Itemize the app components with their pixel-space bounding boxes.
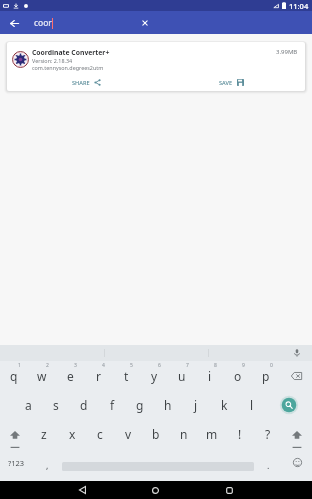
button[interactable]: Home — [142, 481, 169, 499]
button[interactable]: q — [0, 361, 28, 390]
button[interactable]: Back — [69, 481, 96, 499]
staticText: 2 — [46, 362, 49, 369]
button[interactable]: l — [238, 390, 266, 419]
button[interactable]: . — [254, 448, 282, 477]
staticText: 6 — [158, 362, 161, 369]
staticText: SHARE — [72, 79, 90, 87]
button[interactable]: ?123 — [0, 448, 33, 477]
button[interactable]: i — [196, 361, 224, 390]
button[interactable]: n — [170, 419, 198, 448]
staticText: z — [41, 426, 47, 442]
staticText: c — [97, 426, 103, 442]
button[interactable]: o — [224, 361, 252, 390]
staticText: e — [67, 368, 74, 384]
button[interactable]: Coordinate Converter+ — [7, 42, 305, 91]
button[interactable]: x — [58, 419, 86, 448]
staticText: y — [151, 368, 158, 384]
button[interactable]: s — [42, 390, 70, 419]
staticText: k — [221, 397, 228, 413]
button[interactable]: Recent apps — [216, 481, 243, 499]
button[interactable]: Shift — [0, 419, 30, 448]
staticText: m — [206, 426, 218, 442]
staticText: g — [136, 397, 144, 413]
staticText: p — [262, 368, 270, 384]
staticText: ? — [265, 426, 271, 442]
button[interactable]: Shift — [282, 419, 312, 448]
button[interactable]: Voice input — [290, 346, 304, 360]
staticText: o — [234, 368, 242, 384]
staticText: r — [96, 368, 101, 384]
staticText: j — [194, 397, 198, 413]
staticText: b — [152, 426, 160, 442]
button[interactable]: d — [70, 390, 98, 419]
button[interactable]: Search — [266, 390, 312, 419]
button[interactable]: Back — [5, 14, 23, 32]
button[interactable]: e — [56, 361, 84, 390]
button[interactable]: w — [28, 361, 56, 390]
staticText: 8 — [214, 362, 217, 369]
staticText: ! — [238, 426, 242, 442]
button[interactable]: p — [252, 361, 280, 390]
staticText: v — [125, 426, 132, 442]
staticText: SAVE — [219, 79, 233, 87]
staticText: n — [180, 426, 188, 442]
staticText: com.tennyson.degrees2utm — [32, 64, 104, 71]
staticText: d — [80, 397, 88, 413]
button[interactable]: k — [210, 390, 238, 419]
staticText: 7 — [186, 362, 189, 369]
button[interactable]: ! — [226, 419, 254, 448]
staticText: Version: 2.18.34 — [32, 57, 73, 64]
button[interactable]: r — [84, 361, 112, 390]
staticText: h — [164, 397, 172, 413]
button[interactable]: ? — [254, 419, 282, 448]
button[interactable]: c — [86, 419, 114, 448]
staticText: 5 — [130, 362, 133, 369]
button[interactable]: h — [154, 390, 182, 419]
button[interactable]: Space — [62, 448, 254, 477]
staticText: 11:04 — [289, 1, 309, 11]
staticText: x — [69, 426, 76, 442]
button[interactable]: y — [140, 361, 168, 390]
staticText: 0 — [270, 362, 273, 369]
staticText: coor — [34, 17, 52, 29]
staticText: a — [25, 397, 32, 413]
staticText: u — [178, 368, 186, 384]
button[interactable]: z — [30, 419, 58, 448]
button[interactable]: Clear search — [136, 14, 154, 32]
staticText: 3.99MB — [276, 48, 298, 56]
staticText: . — [267, 459, 270, 471]
button[interactable]: SAVE — [216, 76, 247, 89]
button[interactable]: Backspace — [280, 361, 312, 390]
staticText: 3 — [74, 362, 77, 369]
staticText: f — [110, 397, 115, 413]
staticText: Coordinate Converter+ — [32, 48, 110, 57]
button[interactable]: b — [142, 419, 170, 448]
button[interactable]: t — [112, 361, 140, 390]
staticText: l — [250, 397, 254, 413]
staticText: 9 — [242, 362, 245, 369]
staticText: t — [124, 368, 129, 384]
button[interactable]: j — [182, 390, 210, 419]
staticText: s — [53, 397, 59, 413]
button[interactable]: m — [198, 419, 226, 448]
button[interactable]: f — [98, 390, 126, 419]
staticText: ?123 — [8, 458, 25, 468]
button[interactable]: Suggestion 3 — [209, 345, 312, 361]
button[interactable]: g — [126, 390, 154, 419]
button[interactable]: Emoji — [282, 448, 312, 477]
button[interactable]: , — [33, 448, 62, 477]
button[interactable]: u — [168, 361, 196, 390]
staticText: w — [37, 368, 47, 384]
button[interactable]: SHARE — [69, 76, 104, 89]
staticText: i — [208, 368, 212, 384]
staticText: 1 — [18, 362, 21, 369]
staticText: q — [10, 368, 18, 384]
staticText: 4 — [102, 362, 105, 369]
staticText: , — [46, 459, 49, 471]
button[interactable]: a — [14, 390, 42, 419]
button[interactable]: v — [114, 419, 142, 448]
